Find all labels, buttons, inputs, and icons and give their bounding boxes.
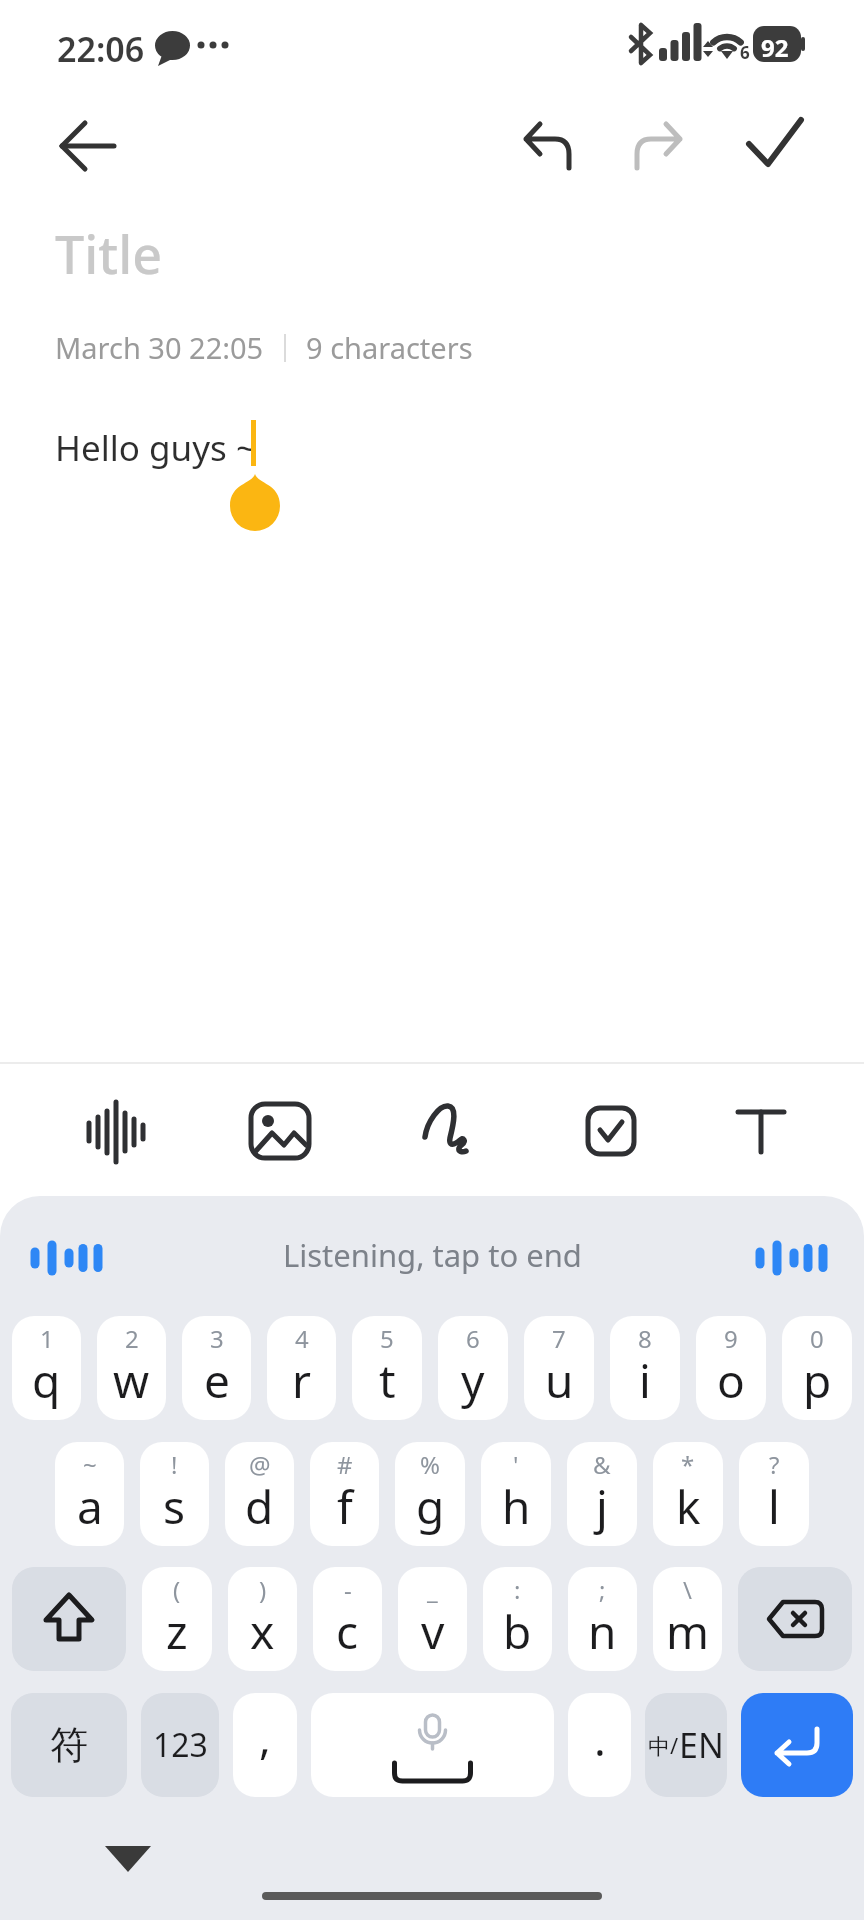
staticText: ) — [259, 1573, 267, 1606]
button[interactable] — [732, 1100, 794, 1164]
staticText: y — [461, 1349, 485, 1412]
staticText: h — [502, 1475, 531, 1538]
staticText: f — [337, 1475, 353, 1538]
button[interactable]: 6 — [438, 1316, 508, 1420]
button[interactable]: 7 — [524, 1316, 594, 1420]
staticText: g — [416, 1475, 445, 1538]
staticText: v — [421, 1600, 445, 1663]
staticText: ~ — [83, 1448, 97, 1481]
button[interactable] — [628, 110, 690, 178]
button[interactable] — [418, 1100, 482, 1164]
button[interactable] — [311, 1693, 554, 1797]
staticText: * — [681, 1448, 695, 1481]
button[interactable]: @ — [225, 1442, 294, 1546]
staticText: Title — [55, 218, 163, 289]
button[interactable]: 0 — [782, 1316, 852, 1420]
button[interactable]: \ — [653, 1567, 722, 1671]
button[interactable] — [741, 1693, 853, 1797]
staticText: 8 — [638, 1322, 652, 1355]
button[interactable]: * — [653, 1442, 723, 1546]
button[interactable]: ~ — [55, 1442, 124, 1546]
staticText: ; — [599, 1573, 606, 1606]
button[interactable]: 8 — [610, 1316, 680, 1420]
staticText: # — [337, 1448, 353, 1481]
button[interactable]: : — [483, 1567, 552, 1671]
button[interactable]: & — [567, 1442, 637, 1546]
staticText: & — [593, 1448, 611, 1481]
staticText: 22:06 — [57, 26, 145, 72]
staticText: 9 characters — [306, 328, 473, 367]
button[interactable] — [738, 1567, 852, 1671]
staticText: % — [420, 1448, 440, 1481]
button[interactable]: ; — [568, 1567, 637, 1671]
staticText: 92 — [761, 31, 789, 64]
staticText: @ — [249, 1448, 271, 1481]
button[interactable]: 3 — [182, 1316, 251, 1420]
staticText: t — [379, 1349, 396, 1412]
button[interactable] — [740, 110, 810, 178]
button[interactable] — [52, 110, 124, 182]
staticText: j — [596, 1475, 608, 1538]
staticText: d — [245, 1475, 274, 1538]
staticText: , — [259, 1707, 271, 1767]
staticText: 5 — [380, 1322, 394, 1355]
button[interactable]: 符 — [11, 1693, 127, 1797]
button[interactable] — [105, 1844, 153, 1876]
staticText: u — [545, 1349, 574, 1412]
staticText: Hello guys ~ — [55, 424, 256, 472]
button[interactable]: % — [395, 1442, 465, 1546]
button[interactable]: 9 — [696, 1316, 766, 1420]
staticText: 9 — [724, 1322, 738, 1355]
staticText: EN — [679, 1722, 724, 1768]
button[interactable]: - — [313, 1567, 382, 1671]
staticText: 中/ — [648, 1730, 679, 1760]
staticText: q — [32, 1349, 61, 1412]
staticText: 6 — [740, 41, 750, 64]
button[interactable] — [85, 1100, 147, 1164]
staticText: 0 — [810, 1322, 824, 1355]
staticText: e — [204, 1349, 230, 1412]
button[interactable] — [249, 1100, 311, 1164]
button[interactable]: ? — [739, 1442, 809, 1546]
button[interactable]: # — [310, 1442, 379, 1546]
staticText: \ — [683, 1573, 692, 1606]
button[interactable]: ( — [142, 1567, 212, 1671]
staticText: r — [292, 1349, 311, 1412]
staticText: Listening, tap to end — [283, 1234, 582, 1276]
staticText: m — [666, 1600, 710, 1663]
staticText: c — [336, 1600, 359, 1663]
staticText: ' — [513, 1448, 519, 1481]
button[interactable]: 2 — [97, 1316, 166, 1420]
button[interactable]: 中/ — [645, 1693, 727, 1797]
button[interactable]: ) — [228, 1567, 297, 1671]
staticText: n — [588, 1600, 617, 1663]
staticText: a — [77, 1475, 103, 1538]
button[interactable]: _ — [398, 1567, 467, 1671]
staticText: ? — [769, 1448, 780, 1481]
button[interactable]: ! — [140, 1442, 209, 1546]
button[interactable]: 4 — [267, 1316, 336, 1420]
button[interactable]: 5 — [352, 1316, 422, 1420]
staticText: w — [113, 1349, 150, 1412]
staticText: k — [676, 1475, 701, 1538]
staticText: 123 — [153, 1723, 208, 1767]
button[interactable] — [580, 1100, 642, 1164]
button[interactable] — [516, 110, 578, 178]
staticText: x — [250, 1600, 275, 1663]
button[interactable]: ' — [481, 1442, 551, 1546]
staticText: 6 — [466, 1322, 480, 1355]
staticText: 符 — [50, 1721, 88, 1769]
staticText: 7 — [552, 1322, 566, 1355]
staticText: . — [594, 1709, 606, 1769]
button[interactable] — [12, 1567, 126, 1671]
staticText: i — [639, 1349, 651, 1412]
staticText: z — [166, 1600, 188, 1663]
staticText: ( — [173, 1573, 181, 1606]
staticText: March 30 22:05 — [55, 328, 264, 367]
staticText: _ — [427, 1573, 438, 1606]
button[interactable]: , — [233, 1693, 297, 1797]
button[interactable]: . — [568, 1693, 631, 1797]
button[interactable]: 123 — [141, 1693, 219, 1797]
staticText: 1 — [40, 1322, 54, 1355]
button[interactable]: 1 — [12, 1316, 81, 1420]
